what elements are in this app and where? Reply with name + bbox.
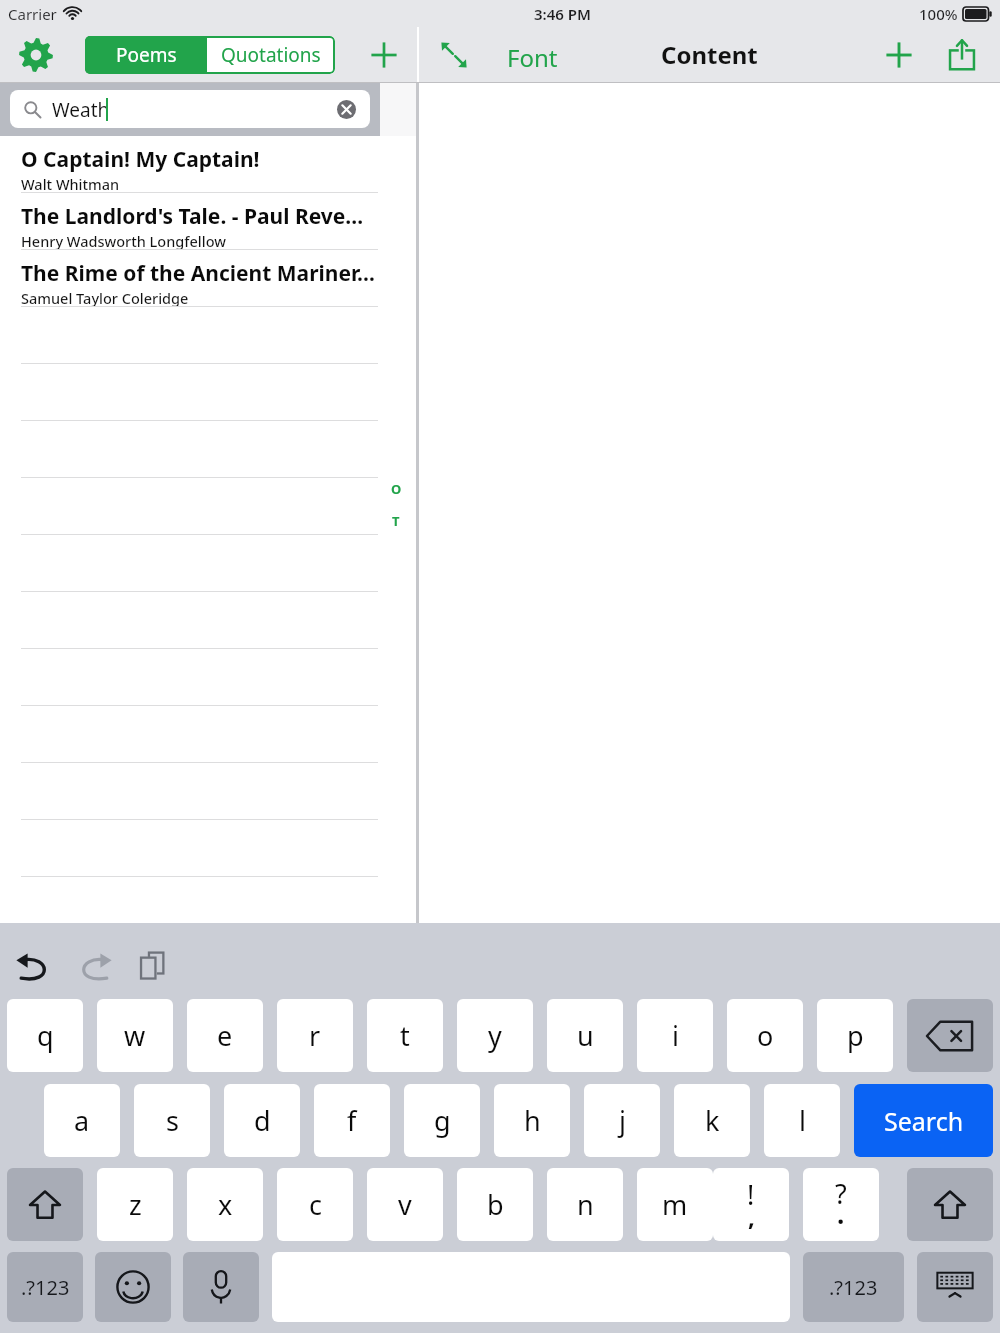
button[interactable]: Shift xyxy=(7,1168,83,1241)
staticText: u xyxy=(577,1017,594,1054)
button[interactable]: y xyxy=(457,999,533,1072)
staticText: Samuel Taylor Coleridge xyxy=(21,288,189,308)
staticText: g xyxy=(434,1102,451,1139)
staticText: c xyxy=(309,1186,322,1223)
staticText: The Rime of the Ancient Mariner… xyxy=(21,259,376,288)
button[interactable]: .?123 xyxy=(803,1252,904,1322)
button[interactable]: l xyxy=(764,1084,840,1157)
button[interactable]: w xyxy=(97,999,173,1072)
button[interactable]: o xyxy=(727,999,803,1072)
button[interactable]: a xyxy=(44,1084,120,1157)
button[interactable]: g xyxy=(404,1084,480,1157)
button[interactable]: j xyxy=(584,1084,660,1157)
button[interactable]: h xyxy=(494,1084,570,1157)
button[interactable]: p xyxy=(817,999,893,1072)
staticText: ? xyxy=(835,1175,847,1212)
staticText: w xyxy=(124,1017,146,1054)
button[interactable]: q xyxy=(7,999,83,1072)
button[interactable]: ? xyxy=(803,1168,879,1241)
button[interactable]: .?123 xyxy=(7,1252,83,1322)
button[interactable]: v xyxy=(367,1168,443,1241)
staticText: Search xyxy=(884,1104,964,1138)
button[interactable]: x xyxy=(187,1168,263,1241)
button[interactable]: Emoji xyxy=(95,1252,171,1322)
button[interactable]: Hide keyboard xyxy=(917,1252,993,1322)
staticText: n xyxy=(577,1186,594,1223)
staticText: Content xyxy=(661,38,758,71)
staticText: Quotations xyxy=(221,42,321,68)
staticText: m xyxy=(662,1186,688,1223)
staticText: a xyxy=(74,1102,90,1139)
button[interactable]: Poems xyxy=(85,36,207,74)
staticText: .?123 xyxy=(21,1274,70,1301)
staticText: d xyxy=(254,1102,271,1139)
staticText: Poems xyxy=(116,42,177,68)
button[interactable]: u xyxy=(547,999,623,1072)
staticText: o xyxy=(757,1017,774,1054)
button[interactable]: Shift xyxy=(907,1168,993,1241)
staticText: ! xyxy=(747,1176,755,1213)
staticText: k xyxy=(705,1102,720,1139)
staticText: Weath xyxy=(52,97,110,123)
staticText: 100% xyxy=(919,4,958,24)
button[interactable]: Weath xyxy=(10,90,370,128)
staticText: z xyxy=(129,1186,142,1223)
staticText: i xyxy=(672,1017,679,1054)
button[interactable]: Search xyxy=(854,1084,993,1157)
staticText: Carrier xyxy=(8,4,57,24)
button[interactable]: Clear search xyxy=(337,100,356,119)
button[interactable]: k xyxy=(674,1084,750,1157)
staticText: h xyxy=(524,1102,541,1139)
staticText: y xyxy=(488,1017,502,1054)
staticText: f xyxy=(347,1102,357,1139)
button[interactable]: Redo xyxy=(74,947,114,987)
button[interactable]: Undo xyxy=(14,947,54,987)
staticText: e xyxy=(217,1017,233,1054)
staticText: , xyxy=(748,1200,755,1233)
button[interactable]: Share xyxy=(939,32,985,78)
button[interactable]: s xyxy=(134,1084,210,1157)
button[interactable]: f xyxy=(314,1084,390,1157)
button[interactable]: Voice input xyxy=(183,1252,259,1322)
button[interactable]: z xyxy=(97,1168,173,1241)
button[interactable]: Settings xyxy=(18,37,54,73)
staticText: x xyxy=(218,1186,233,1223)
button[interactable]: Add poem xyxy=(366,37,402,73)
button[interactable]: Add xyxy=(878,34,920,76)
button[interactable]: ! xyxy=(713,1168,789,1241)
button[interactable]: The Rime of the Ancient Mariner… xyxy=(0,250,417,307)
staticText: 3:46 PM xyxy=(534,4,591,24)
staticText: . xyxy=(837,1196,845,1231)
staticText: Henry Wadsworth Longfellow xyxy=(21,231,226,251)
staticText: .?123 xyxy=(829,1274,878,1301)
staticText: r xyxy=(309,1017,321,1054)
button[interactable]: O Captain! My Captain! xyxy=(0,136,417,193)
staticText: q xyxy=(37,1017,54,1054)
staticText: T xyxy=(392,512,400,530)
staticText: l xyxy=(799,1102,806,1139)
button[interactable]: m xyxy=(637,1168,713,1241)
button[interactable]: i xyxy=(637,999,713,1072)
button[interactable]: t xyxy=(367,999,443,1072)
button[interactable]: r xyxy=(277,999,353,1072)
button[interactable]: e xyxy=(187,999,263,1072)
button[interactable]: n xyxy=(547,1168,623,1241)
button[interactable]: b xyxy=(457,1168,533,1241)
staticText: b xyxy=(487,1186,504,1223)
staticText: O Captain! My Captain! xyxy=(21,145,260,174)
button[interactable]: Font xyxy=(507,41,558,74)
button[interactable]: Expand xyxy=(439,40,469,70)
button[interactable]: Paste xyxy=(136,949,172,985)
staticText: O xyxy=(391,480,402,498)
staticText: The Landlord's Tale. - Paul Reve… xyxy=(21,202,364,231)
staticText: Walt Whitman xyxy=(21,174,120,194)
button[interactable]: Quotations xyxy=(207,36,335,74)
button[interactable]: Backspace xyxy=(907,999,993,1072)
button[interactable]: c xyxy=(277,1168,353,1241)
staticText: j xyxy=(619,1102,626,1139)
staticText: v xyxy=(398,1186,412,1223)
staticText: s xyxy=(166,1102,179,1139)
button[interactable]: The Landlord's Tale. - Paul Reve… xyxy=(0,193,417,250)
button[interactable]: d xyxy=(224,1084,300,1157)
